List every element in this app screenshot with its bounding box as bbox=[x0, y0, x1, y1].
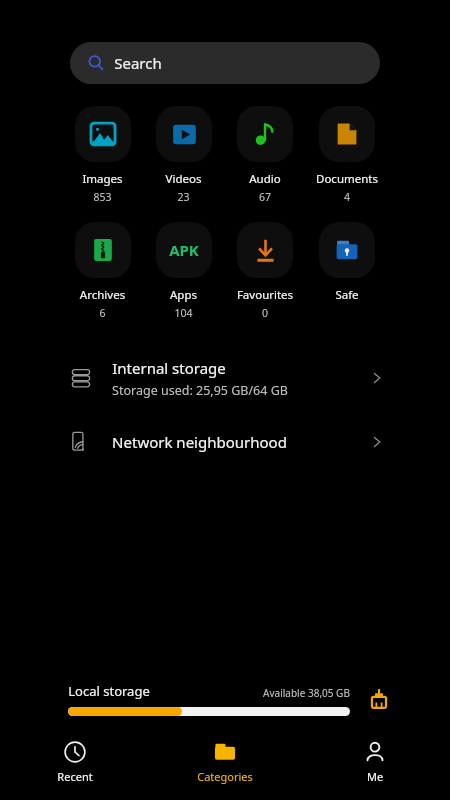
button[interactable]: Favourites bbox=[224, 222, 306, 320]
button[interactable]: Audio bbox=[224, 106, 306, 204]
button[interactable]: Me bbox=[300, 734, 450, 790]
button[interactable]: Network neighbourhood bbox=[0, 422, 450, 462]
staticText: Images bbox=[62, 171, 143, 187]
button[interactable]: Search bbox=[70, 42, 380, 84]
staticText: Favourites bbox=[224, 287, 306, 303]
button[interactable]: Documents bbox=[306, 106, 388, 204]
staticText: 853 bbox=[62, 190, 143, 204]
staticText: Storage used: 25,95 GB/64 GB bbox=[112, 382, 288, 399]
button[interactable]: Categories bbox=[150, 734, 300, 790]
button[interactable]: Videos bbox=[143, 106, 224, 204]
staticText: Safe bbox=[306, 287, 388, 303]
button[interactable]: APK bbox=[143, 222, 224, 320]
staticText: Documents bbox=[306, 171, 388, 187]
button[interactable]: Recent bbox=[0, 734, 150, 790]
staticText: Internal storage bbox=[112, 358, 226, 378]
staticText: Videos bbox=[143, 171, 224, 187]
staticText: Recent bbox=[0, 769, 150, 784]
button[interactable]: Internal storage bbox=[0, 352, 450, 404]
staticText: APK bbox=[169, 240, 199, 260]
staticText: Local storage bbox=[68, 682, 150, 700]
staticText: Apps bbox=[143, 287, 224, 303]
staticText: Audio bbox=[224, 171, 306, 187]
staticText: Search bbox=[114, 53, 162, 73]
staticText: 23 bbox=[143, 190, 224, 204]
staticText: 6 bbox=[62, 306, 143, 320]
staticText: Me bbox=[300, 769, 450, 784]
staticText: Categories bbox=[150, 769, 300, 784]
staticText: 104 bbox=[143, 306, 224, 320]
button[interactable]: Clean up storage bbox=[364, 684, 394, 714]
button[interactable]: Archives bbox=[62, 222, 143, 320]
staticText: 0 bbox=[224, 306, 306, 320]
staticText: Available 38,05 GB bbox=[263, 686, 350, 700]
staticText: Network neighbourhood bbox=[112, 432, 287, 452]
staticText: Archives bbox=[62, 287, 143, 303]
staticText: 4 bbox=[306, 190, 388, 204]
staticText: 67 bbox=[224, 190, 306, 204]
button[interactable]: Safe bbox=[306, 222, 388, 303]
button[interactable]: Images bbox=[62, 106, 143, 204]
